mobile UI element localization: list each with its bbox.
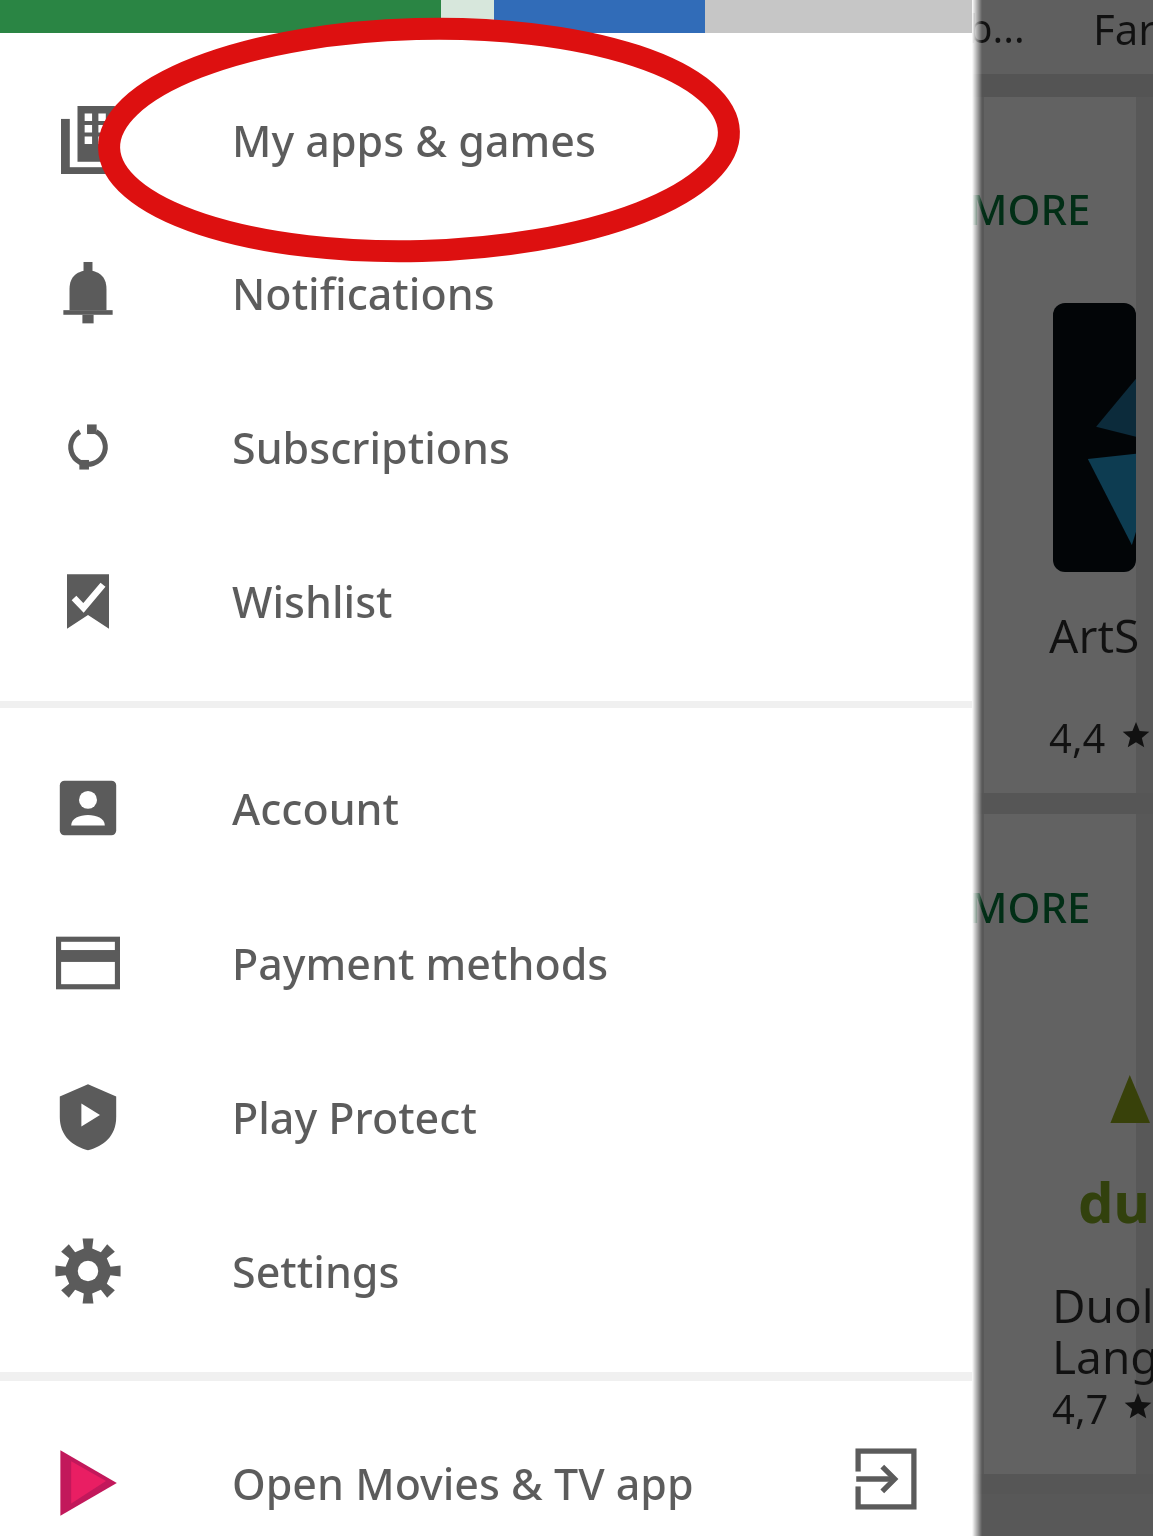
staticText: Settings [232, 1242, 400, 1301]
staticText: MORE [969, 878, 1091, 935]
staticText: b... [968, 0, 1025, 54]
staticText: Account [232, 779, 400, 838]
staticText: 4,7 [1052, 1381, 1109, 1435]
staticText: My apps & games [232, 111, 596, 170]
staticText: 4,4 [1049, 710, 1106, 764]
button[interactable]: Subscriptions [0, 371, 972, 523]
staticText: Duol [1052, 1274, 1153, 1337]
button[interactable]: Account [0, 732, 972, 884]
staticText: Payment methods [232, 934, 609, 993]
button[interactable]: Notifications [0, 217, 972, 369]
staticText: Wishlist [232, 572, 393, 631]
staticText: MORE [969, 180, 1091, 237]
staticText: du [1078, 1163, 1150, 1239]
staticText: Notifications [232, 264, 495, 323]
staticText: ArtS [1049, 604, 1140, 667]
button[interactable]: My apps & games [0, 64, 972, 216]
staticText: Play Protect [232, 1088, 477, 1147]
button[interactable]: Settings [0, 1195, 972, 1347]
staticText: Open Movies & TV app [232, 1454, 694, 1513]
staticText: Lang [1052, 1325, 1153, 1388]
staticText: Far [1093, 0, 1153, 57]
button[interactable]: Wishlist [0, 525, 972, 677]
button[interactable]: Play Protect [0, 1041, 972, 1193]
button[interactable]: Open external app [836, 1429, 936, 1529]
button[interactable]: Open Movies & TV app [0, 1407, 972, 1536]
button[interactable]: Payment methods [0, 887, 972, 1039]
staticText: Subscriptions [232, 418, 510, 477]
